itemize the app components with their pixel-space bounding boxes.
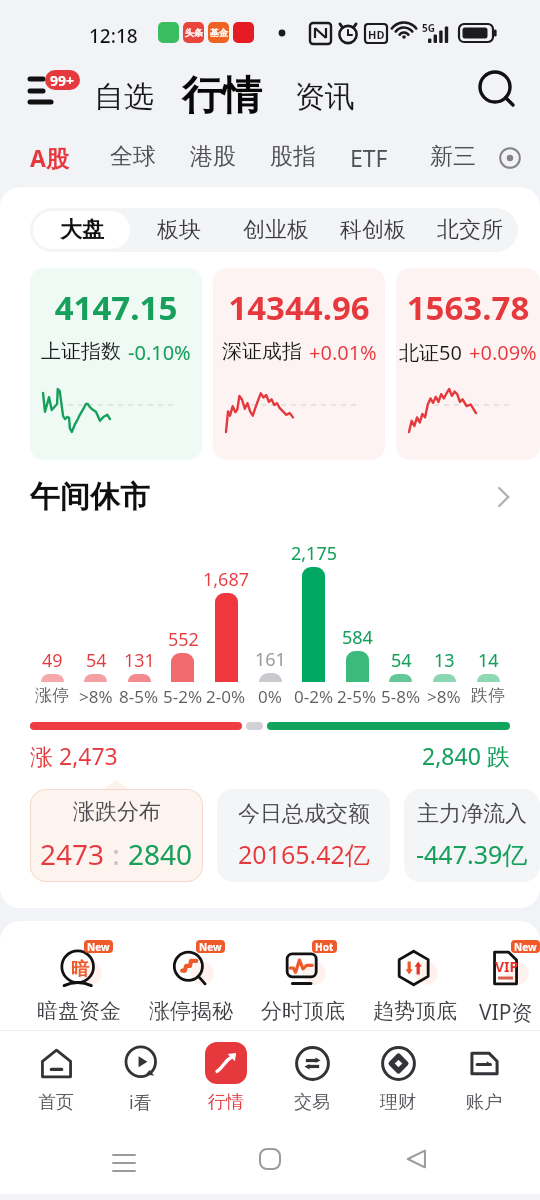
button[interactable]: 科创板 bbox=[324, 211, 421, 249]
staticText: 首页 bbox=[38, 1091, 74, 1114]
staticText: 自选 bbox=[94, 78, 154, 116]
button[interactable]: 账户 bbox=[441, 1042, 527, 1114]
staticText: 行情 bbox=[182, 70, 262, 120]
staticText: i看 bbox=[129, 1090, 152, 1115]
staticText: 主力净流入 bbox=[417, 800, 527, 828]
button[interactable]: VIP bbox=[471, 946, 540, 1027]
staticText: 行情 bbox=[208, 1091, 244, 1114]
staticText: 深证成指 bbox=[222, 339, 302, 364]
staticText: 2,840 跌 bbox=[422, 740, 510, 771]
staticText: 552 bbox=[168, 627, 199, 652]
button[interactable]: 港股 bbox=[182, 136, 244, 177]
button[interactable]: 今日总成交额 bbox=[217, 789, 390, 882]
button[interactable]: 股指 bbox=[262, 136, 324, 177]
staticText: 54 bbox=[391, 648, 412, 673]
staticText: 北交所 bbox=[437, 216, 503, 244]
staticText: 1563.78 bbox=[396, 285, 540, 330]
staticText: 54 bbox=[86, 648, 107, 673]
staticText: 港股 bbox=[190, 142, 236, 171]
staticText: 131 bbox=[124, 648, 155, 673]
staticText: -447.39亿 bbox=[416, 837, 528, 871]
staticText: >8% bbox=[427, 685, 461, 708]
button[interactable]: 理财 bbox=[355, 1042, 441, 1114]
staticText: 大盘 bbox=[60, 216, 104, 244]
button[interactable]: 午间休市 bbox=[30, 478, 516, 516]
staticText: 全球 bbox=[110, 142, 156, 171]
staticText: New bbox=[199, 940, 222, 953]
staticText: 创业板 bbox=[243, 216, 309, 244]
staticText: 科创板 bbox=[340, 216, 406, 244]
button[interactable]: 板块 bbox=[130, 211, 227, 249]
button[interactable]: 4147.15 bbox=[30, 268, 202, 460]
staticText: 涨停 bbox=[35, 685, 69, 706]
button[interactable]: 大盘 bbox=[33, 211, 130, 249]
staticText: 2473 bbox=[40, 835, 105, 873]
staticText: 账户 bbox=[466, 1091, 502, 1114]
staticText: VIP资 bbox=[479, 998, 533, 1027]
staticText: 5-2% bbox=[163, 685, 203, 708]
staticText: 2-0% bbox=[206, 685, 246, 708]
staticText: A股 bbox=[30, 142, 69, 173]
button[interactable]: 涨跌分布 bbox=[31, 790, 202, 881]
staticText: 板块 bbox=[157, 216, 201, 244]
button[interactable]: Back bbox=[394, 1136, 440, 1182]
button[interactable]: 暗 bbox=[23, 946, 135, 1024]
button[interactable]: 14344.96 bbox=[213, 268, 385, 460]
staticText: 49 bbox=[42, 648, 63, 673]
button[interactable]: 主力净流入 bbox=[404, 789, 540, 882]
button[interactable]: 行情 bbox=[183, 1042, 269, 1114]
staticText: 5G bbox=[422, 21, 435, 35]
staticText: 趋势顶底 bbox=[373, 998, 457, 1024]
button[interactable]: 创业板 bbox=[227, 211, 324, 249]
button[interactable]: 首页 bbox=[13, 1042, 98, 1114]
button[interactable]: 资讯 bbox=[289, 70, 361, 124]
button[interactable]: i看 bbox=[98, 1041, 183, 1115]
staticText: New bbox=[514, 940, 537, 953]
button[interactable]: More categories bbox=[494, 142, 526, 174]
button[interactable]: 1563.78 bbox=[396, 268, 540, 460]
staticText: 上证指数 bbox=[41, 339, 121, 364]
staticText: 基金 bbox=[210, 27, 228, 38]
staticText: 14344.96 bbox=[213, 285, 385, 330]
button[interactable]: Recents bbox=[101, 1136, 147, 1182]
staticText: Hot bbox=[315, 940, 334, 953]
button[interactable]: 趋势顶底 bbox=[359, 946, 471, 1024]
staticText: 1,687 bbox=[203, 567, 250, 592]
button[interactable]: A股 bbox=[22, 136, 77, 179]
staticText: 暗盘资金 bbox=[37, 998, 121, 1024]
staticText: 0% bbox=[258, 685, 282, 708]
staticText: 涨停揭秘 bbox=[149, 998, 233, 1024]
staticText: New bbox=[87, 940, 110, 953]
button[interactable]: 行情 bbox=[176, 62, 268, 128]
button[interactable]: 北交所 bbox=[421, 211, 518, 249]
staticText: -0.10% bbox=[128, 339, 191, 366]
button[interactable]: 交易 bbox=[269, 1042, 355, 1114]
staticText: 股指 bbox=[270, 142, 316, 171]
button[interactable]: Search bbox=[472, 65, 518, 111]
button[interactable]: Hot bbox=[247, 946, 359, 1024]
staticText: 99+ bbox=[50, 71, 75, 90]
button[interactable]: ETF bbox=[342, 136, 396, 179]
staticText: 资讯 bbox=[295, 78, 355, 116]
staticText: 新三 bbox=[430, 142, 476, 171]
staticText: 13 bbox=[434, 648, 455, 673]
staticText: 头条 bbox=[185, 27, 203, 38]
button[interactable]: 自选 bbox=[88, 70, 160, 124]
staticText: 14 bbox=[478, 648, 499, 673]
staticText: 20165.42亿 bbox=[238, 837, 370, 871]
staticText: VIP bbox=[495, 957, 519, 976]
button[interactable]: New bbox=[135, 946, 247, 1024]
button[interactable]: Home bbox=[247, 1136, 293, 1182]
staticText: 5-8% bbox=[381, 685, 421, 708]
staticText: +0.01% bbox=[309, 339, 377, 366]
staticText: 2-5% bbox=[337, 685, 377, 708]
staticText: 2,175 bbox=[291, 541, 338, 566]
staticText: 理财 bbox=[380, 1091, 416, 1114]
button[interactable]: 全球 bbox=[102, 136, 164, 177]
staticText: 584 bbox=[342, 625, 373, 650]
staticText: 涨 2,473 bbox=[30, 740, 118, 771]
button[interactable]: Menu bbox=[22, 68, 84, 116]
staticText: 暗 bbox=[71, 958, 89, 981]
button[interactable]: 新三 bbox=[422, 136, 484, 177]
staticText: : bbox=[105, 835, 128, 873]
